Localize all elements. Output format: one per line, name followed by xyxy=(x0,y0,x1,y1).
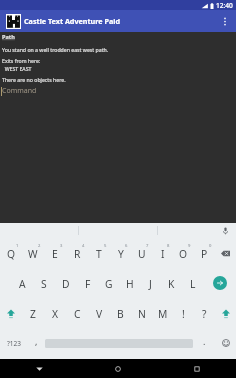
staticText: 7 xyxy=(146,243,149,249)
staticText: WEST EAST xyxy=(2,65,32,72)
button[interactable]: ? xyxy=(194,298,215,328)
staticText: ? xyxy=(202,307,207,321)
button[interactable]: A xyxy=(11,268,33,298)
button[interactable]: . xyxy=(193,328,215,358)
staticText: 4 xyxy=(82,243,85,249)
button[interactable]: B xyxy=(110,298,131,328)
staticText: U xyxy=(138,247,146,261)
button[interactable]: O xyxy=(173,238,194,268)
staticText: C xyxy=(74,307,81,321)
staticText: A xyxy=(19,277,26,291)
button[interactable]: Recents xyxy=(157,359,236,378)
staticText: ?123 xyxy=(7,339,21,348)
staticText: S xyxy=(41,277,47,291)
button[interactable]: I xyxy=(152,238,173,268)
button[interactable]: Back xyxy=(0,359,78,378)
button[interactable]: R xyxy=(66,238,88,268)
staticText: R xyxy=(74,247,81,261)
staticText: M xyxy=(158,307,168,321)
staticText: 0 xyxy=(209,243,212,249)
button[interactable]: Home xyxy=(78,359,157,378)
staticText: Y xyxy=(118,247,124,261)
staticText: Z xyxy=(30,307,36,321)
button[interactable]: Shift xyxy=(0,298,22,328)
button[interactable]: W xyxy=(22,238,44,268)
staticText: O xyxy=(179,247,188,261)
button[interactable]: More options xyxy=(214,10,236,32)
button[interactable]: H xyxy=(119,268,140,298)
staticText: Q xyxy=(7,247,16,261)
staticText: 12:40 xyxy=(216,1,233,10)
button[interactable]: G xyxy=(98,268,119,298)
button[interactable]: M xyxy=(152,298,173,328)
staticText: Castle Text Adventure Paid xyxy=(24,16,214,26)
staticText: Exits from here: xyxy=(2,57,41,64)
button[interactable]: Emoji xyxy=(215,328,236,358)
staticText: , xyxy=(35,335,38,347)
staticText: 9 xyxy=(188,243,191,249)
staticText: T xyxy=(96,247,102,261)
button[interactable]: Q xyxy=(0,238,22,268)
button[interactable]: Z xyxy=(22,298,44,328)
staticText: X xyxy=(52,307,59,321)
staticText: D xyxy=(62,277,70,291)
button[interactable]: F xyxy=(77,268,98,298)
button[interactable]: U xyxy=(131,238,152,268)
button[interactable] xyxy=(158,223,236,238)
staticText: Command xyxy=(2,86,37,96)
staticText: I xyxy=(161,247,165,261)
staticText: L xyxy=(190,277,196,291)
button[interactable]: P xyxy=(194,238,215,268)
staticText: You stand on a well trodden east west pa… xyxy=(2,46,109,53)
button[interactable]: Voice input xyxy=(214,223,236,238)
button[interactable]: ! xyxy=(173,298,194,328)
button[interactable]: T xyxy=(88,238,110,268)
button[interactable]: L xyxy=(182,268,203,298)
staticText: Path xyxy=(2,33,15,41)
staticText: 5 xyxy=(104,243,107,249)
button[interactable]: X xyxy=(44,298,66,328)
staticText: 1 xyxy=(16,243,19,249)
button[interactable]: S xyxy=(33,268,55,298)
button[interactable]: ?123 xyxy=(0,328,27,358)
staticText: N xyxy=(138,307,146,321)
staticText: B xyxy=(117,307,124,321)
staticText: 8 xyxy=(167,243,170,249)
staticText: . xyxy=(203,335,206,347)
button[interactable]: Backspace xyxy=(215,238,236,268)
staticText: 3 xyxy=(60,243,63,249)
staticText: E xyxy=(52,247,58,261)
button[interactable]: V xyxy=(88,298,110,328)
staticText: 6 xyxy=(125,243,128,249)
button[interactable]: C xyxy=(66,298,88,328)
staticText: F xyxy=(85,277,91,291)
staticText: H xyxy=(126,277,134,291)
staticText: K xyxy=(168,277,175,291)
button[interactable]: Space xyxy=(45,328,193,358)
staticText: J xyxy=(149,277,152,291)
button[interactable]: Y xyxy=(110,238,131,268)
button[interactable]: K xyxy=(161,268,182,298)
button[interactable]: N xyxy=(131,298,152,328)
staticText: V xyxy=(96,307,103,321)
staticText: 2 xyxy=(38,243,41,249)
staticText: ! xyxy=(182,307,185,321)
button[interactable]: , xyxy=(27,328,45,358)
staticText: P xyxy=(201,247,208,261)
button[interactable]: Enter xyxy=(213,276,227,290)
staticText: W xyxy=(28,247,38,261)
button[interactable]: Command xyxy=(1,86,37,96)
button[interactable]: D xyxy=(55,268,77,298)
staticText: There are no objects here. xyxy=(2,76,66,83)
button[interactable]: E xyxy=(44,238,66,268)
button[interactable]: J xyxy=(140,268,161,298)
button[interactable]: Caps lock xyxy=(215,298,236,328)
staticText: G xyxy=(105,277,113,291)
